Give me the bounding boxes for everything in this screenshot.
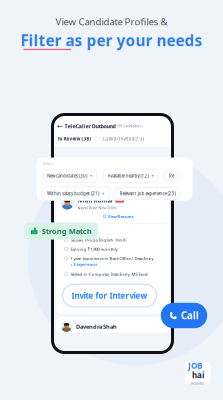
button[interactable]: Called/Invited (13) <box>102 136 152 142</box>
staticText: JOB <box>188 360 202 371</box>
staticText: Recruiter <box>191 381 204 385</box>
staticText: Skilled in Computer, Data Entry, MS Exce… <box>71 271 148 277</box>
button[interactable]: Relevant job experience (23) <box>115 187 180 199</box>
staticText: + <box>101 190 104 197</box>
staticText: Relevant job experience (23) <box>119 190 175 196</box>
staticText: (30 candidates) <box>115 124 142 128</box>
staticText: To Review (38) <box>57 136 91 142</box>
staticText: New candidates (30) <box>47 173 87 179</box>
staticText: Male <box>71 228 80 233</box>
button[interactable]: Call <box>161 303 207 328</box>
staticText: TeleCaller Outbound <box>64 122 115 130</box>
staticText: ← <box>57 122 63 130</box>
staticText: Nitin Kumar <box>77 196 113 204</box>
staticText: Earning ₹ 1,800 monthly <box>71 246 118 252</box>
button[interactable]: Re <box>164 170 178 182</box>
staticText: Re <box>169 173 174 179</box>
staticText: Called/Invited (13) <box>102 136 143 142</box>
button[interactable]: To Review (38) <box>52 136 102 142</box>
staticText: NEW <box>117 198 123 202</box>
staticText: + <box>151 172 154 180</box>
staticText: Call <box>181 309 199 322</box>
button[interactable]: View Resume <box>104 214 133 219</box>
button[interactable]: New candidates (30) <box>42 169 97 183</box>
button[interactable]: Invite for Interview <box>63 284 157 307</box>
staticText: Anand Vihar, New Delhi <box>77 205 116 210</box>
staticText: View Resume <box>107 214 133 219</box>
staticText: Invite for Interview <box>72 290 148 301</box>
staticText: + <box>89 172 92 180</box>
button[interactable]: Within salary budget (21) <box>42 187 109 200</box>
staticText: hai <box>192 370 204 381</box>
staticText: Within salary budget (21) <box>47 190 99 196</box>
staticText: Available nearby (12) <box>107 173 148 179</box>
button[interactable]: Back <box>55 123 64 130</box>
staticText: Filter as per your needs <box>20 30 202 51</box>
staticText: View Candidate Profiles & <box>55 15 167 28</box>
staticText: + 2 experiences <box>71 262 98 267</box>
staticText: Davendra Shah <box>76 322 117 330</box>
staticText: Strong Match <box>42 226 92 236</box>
staticText: 1 year experience in Back Office / Data … <box>71 256 154 261</box>
staticText: Speaks Thoda English, Hindi <box>71 237 127 243</box>
button[interactable]: Available nearby (12) <box>103 169 158 183</box>
staticText: Filters <box>42 161 53 166</box>
